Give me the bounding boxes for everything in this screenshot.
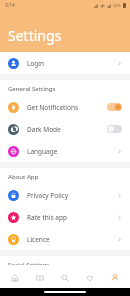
- button[interactable]: Privacy Policy: [0, 184, 130, 206]
- button[interactable]: Get Notifications: [0, 96, 130, 118]
- button[interactable]: Account: [105, 268, 125, 288]
- staticText: Language: [27, 147, 117, 156]
- button[interactable]: Off: [107, 125, 122, 133]
- staticText: Settings: [8, 26, 62, 45]
- button[interactable]: Language: [0, 140, 130, 162]
- staticText: 3:14: [5, 2, 15, 9]
- staticText: General Settings: [8, 85, 56, 93]
- button[interactable]: Licence: [0, 228, 130, 250]
- staticText: About App: [8, 173, 39, 181]
- staticText: 54%: [113, 3, 121, 8]
- staticText: Login: [27, 59, 117, 68]
- staticText: Privacy Policy: [27, 191, 117, 200]
- button[interactable]: Favourites: [80, 268, 100, 288]
- button[interactable]: Search: [55, 268, 75, 288]
- staticText: Dark Mode: [27, 125, 107, 134]
- button[interactable]: On: [107, 103, 122, 111]
- button[interactable]: Login: [0, 52, 130, 74]
- staticText: Licence: [27, 235, 117, 244]
- button[interactable]: Rate this app: [0, 206, 130, 228]
- staticText: Rate this app: [27, 213, 117, 222]
- button[interactable]: Dark Mode: [0, 118, 130, 140]
- staticText: Social Settings: [8, 261, 50, 265]
- button[interactable]: Home: [5, 268, 25, 288]
- staticText: Get Notifications: [27, 103, 107, 112]
- button[interactable]: Videos: [30, 268, 50, 288]
